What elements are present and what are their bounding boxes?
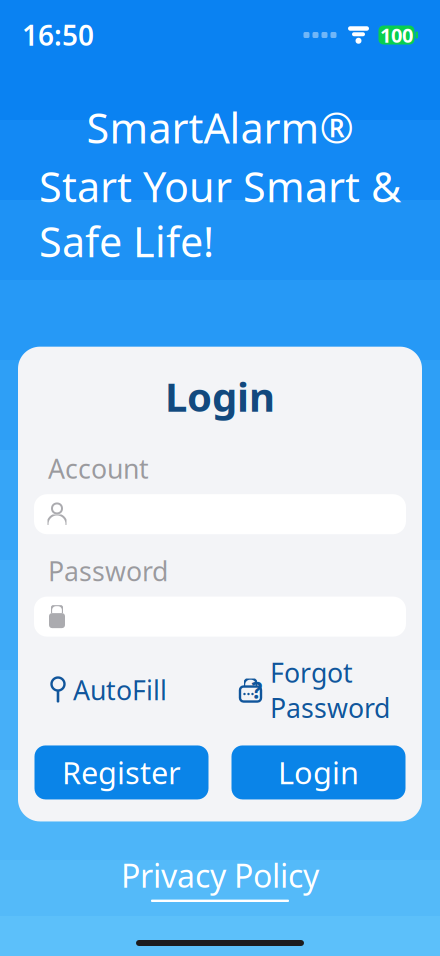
staticText: Start Your Smart & Safe Life!: [39, 159, 401, 269]
button[interactable]: Register: [34, 745, 208, 799]
staticText: Login: [278, 752, 359, 793]
staticText: Register: [62, 752, 181, 793]
staticText: ?: [251, 675, 262, 705]
staticText: 100: [380, 22, 413, 48]
button[interactable]: ?: [238, 655, 390, 725]
staticText: Login: [165, 370, 275, 423]
button[interactable]: AutoFill: [50, 672, 167, 708]
staticText: 16:50: [22, 16, 94, 54]
staticText: SmartAlarm®: [86, 100, 353, 155]
staticText: Password: [48, 553, 168, 589]
button[interactable]: Privacy Policy: [121, 854, 319, 902]
staticText: AutoFill: [73, 672, 167, 708]
staticText: Privacy Policy: [121, 854, 319, 897]
staticText: Account: [48, 451, 149, 486]
button[interactable]: Login: [231, 745, 405, 799]
staticText: Forgot Password: [270, 655, 390, 725]
